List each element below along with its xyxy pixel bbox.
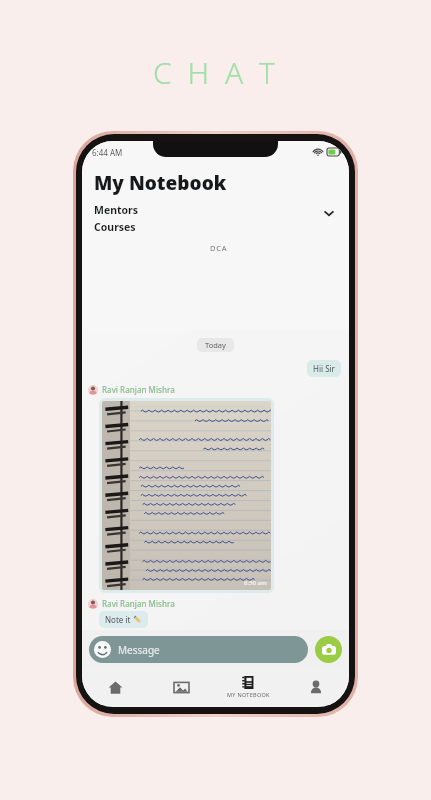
button[interactable]: Profile: [282, 669, 349, 705]
staticText: Today: [205, 340, 226, 350]
staticText: Ravi Ranjan Mishra: [102, 598, 175, 609]
staticText: MY NOTEBOOK: [227, 691, 270, 698]
button[interactable]: Handwritten notes photo: [102, 401, 271, 590]
button[interactable]: Mentors: [82, 203, 349, 234]
button[interactable]: Hii Sir: [307, 360, 341, 377]
staticText: Note it: [105, 614, 133, 625]
button[interactable]: Gallery: [148, 669, 215, 705]
staticText: 6:44 AM: [92, 147, 123, 158]
staticText: Ravi Ranjan Mishra: [102, 384, 175, 395]
staticText: My Notebook: [94, 170, 227, 196]
staticText: Message: [118, 643, 160, 657]
staticText: 6:30 am: [244, 579, 267, 587]
button[interactable]: Message: [89, 636, 308, 663]
button[interactable]: Note it: [99, 611, 148, 628]
staticText: C H A T: [153, 52, 279, 93]
staticText: Mentors: [94, 203, 139, 217]
staticText: Courses: [94, 220, 136, 234]
button[interactable]: DCA: [88, 243, 349, 260]
button[interactable]: Home: [82, 669, 148, 705]
button[interactable]: Camera: [315, 636, 342, 663]
staticText: DCA: [210, 243, 228, 253]
button[interactable]: MY NOTEBOOK: [215, 669, 282, 705]
staticText: Hii Sir: [313, 363, 335, 374]
